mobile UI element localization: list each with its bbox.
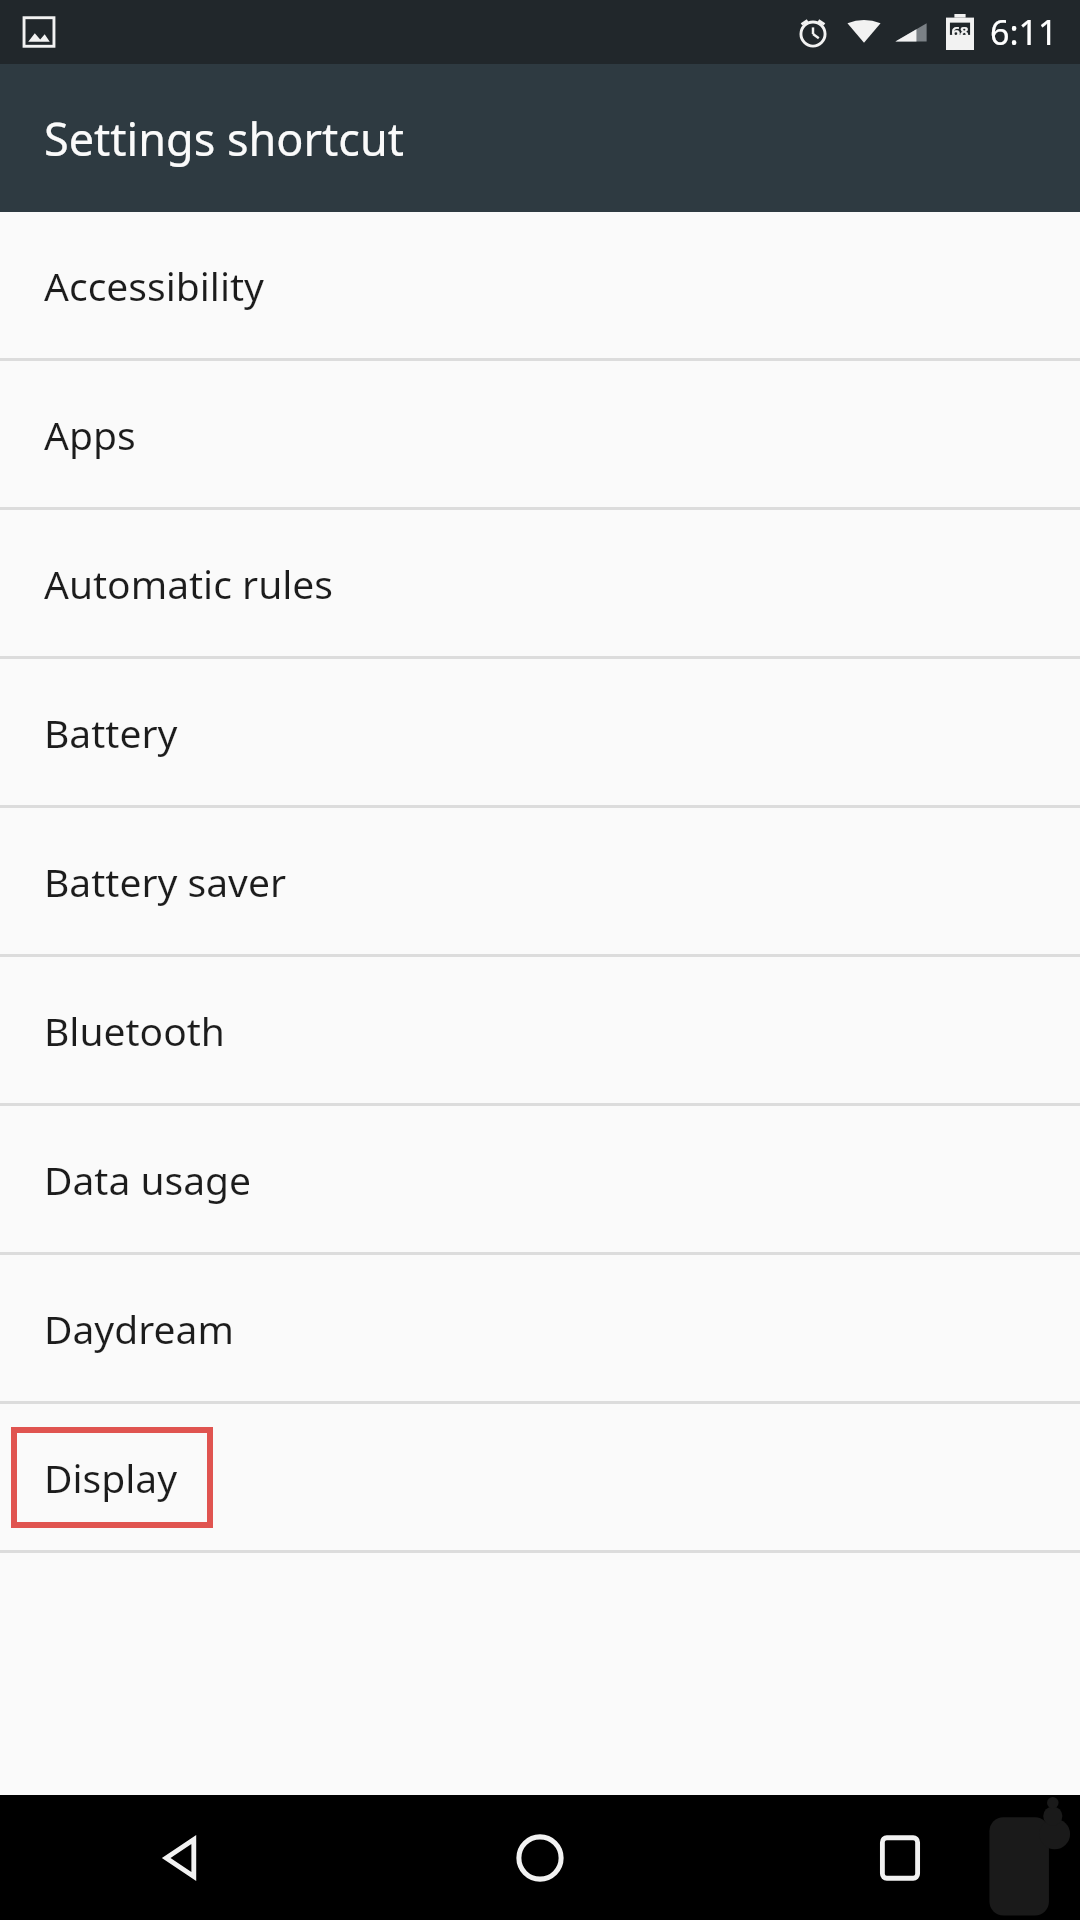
button[interactable]: Display — [0, 1404, 1080, 1550]
button[interactable]: Recent apps — [720, 1795, 1080, 1920]
button[interactable]: Accessibility — [0, 212, 1080, 358]
button[interactable]: Bluetooth — [0, 957, 1080, 1103]
button[interactable]: Apps — [0, 361, 1080, 507]
staticText: Automatic rules — [44, 557, 333, 610]
staticText: 6:11 — [990, 9, 1058, 55]
staticText: Bluetooth — [44, 1004, 225, 1057]
staticText: Data usage — [44, 1153, 252, 1206]
button[interactable]: Automatic rules — [0, 510, 1080, 656]
staticText: Battery saver — [44, 855, 286, 908]
button[interactable]: Battery saver — [0, 808, 1080, 954]
staticText: Battery — [44, 706, 178, 759]
button[interactable]: Home — [360, 1795, 720, 1920]
button[interactable]: Daydream — [0, 1255, 1080, 1401]
staticText: 68 — [951, 21, 969, 41]
button[interactable]: Back — [0, 1795, 360, 1920]
button[interactable]: Data usage — [0, 1106, 1080, 1252]
button[interactable]: Battery — [0, 659, 1080, 805]
staticText: Accessibility — [44, 259, 264, 312]
staticText: Daydream — [44, 1302, 234, 1355]
staticText: Display — [44, 1451, 178, 1504]
staticText: Apps — [44, 408, 136, 461]
staticText: Settings shortcut — [44, 108, 405, 169]
